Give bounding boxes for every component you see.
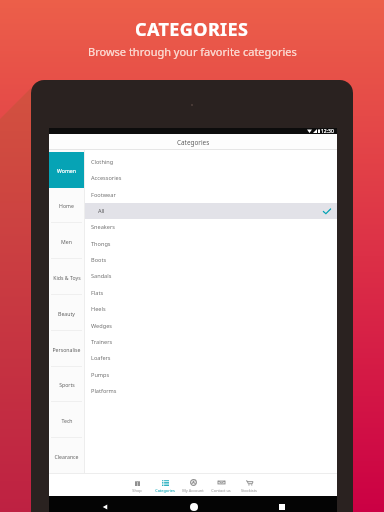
staticText: 12:30 (321, 128, 334, 134)
staticText: Footwear (91, 191, 116, 199)
staticText: Browse through your favorite categories (88, 44, 297, 59)
button[interactable]: Home (188, 501, 199, 512)
staticText: Loafers (91, 354, 111, 362)
staticText: Clearance (54, 453, 79, 460)
staticText: Categories (155, 488, 175, 493)
button[interactable]: Wedges (84, 318, 337, 334)
staticText: Tech (61, 417, 73, 424)
staticText: Platforms (91, 387, 117, 395)
button[interactable]: All (84, 203, 337, 219)
button[interactable]: Men (49, 223, 84, 259)
staticText: Boots (91, 256, 107, 264)
button[interactable]: Boots (84, 252, 337, 268)
staticText: Contact us (211, 488, 231, 493)
button[interactable]: Tech (49, 402, 84, 438)
button[interactable]: Recents (276, 501, 287, 512)
button[interactable]: Pumps (84, 367, 337, 383)
staticText: Heels (91, 305, 106, 313)
staticText: Sandals (91, 272, 112, 280)
staticText: Wedges (91, 322, 112, 330)
staticText: Pumps (91, 371, 110, 379)
button[interactable]: Clothing (84, 154, 337, 170)
button[interactable]: Categories (151, 479, 179, 493)
staticText: All (98, 207, 105, 215)
staticText: Shop (132, 488, 142, 493)
button[interactable]: Sneakers (84, 219, 337, 235)
button[interactable]: Loafers (84, 350, 337, 366)
button[interactable]: Sandals (84, 268, 337, 284)
staticText: Flats (91, 289, 104, 297)
button[interactable]: Heels (84, 301, 337, 317)
button[interactable]: Shop (123, 479, 151, 493)
staticText: Categories (177, 138, 210, 147)
button[interactable]: Kids & Toys (49, 259, 84, 295)
button[interactable]: Flats (84, 285, 337, 301)
button[interactable]: Beauty (49, 295, 84, 331)
staticText: Women (57, 167, 76, 174)
staticText: Thongs (91, 240, 111, 248)
button[interactable]: Personalise (49, 331, 84, 367)
button[interactable]: Clearance (49, 438, 84, 474)
staticText: Kids & Toys (53, 274, 81, 281)
staticText: Men (61, 238, 72, 245)
button[interactable]: Stockists (235, 479, 263, 493)
staticText: Clothing (91, 158, 114, 166)
button[interactable]: Home (49, 187, 84, 223)
button[interactable]: My Account (179, 479, 207, 493)
staticText: Stockists (241, 488, 257, 493)
staticText: Accessories (91, 174, 122, 182)
button[interactable]: Back (99, 501, 110, 512)
staticText: My Account (182, 488, 204, 493)
button[interactable]: Sports (49, 366, 84, 402)
staticText: Sports (59, 381, 75, 388)
button[interactable]: Contact us (207, 479, 235, 493)
staticText: Personalise (52, 346, 81, 353)
staticText: CATEGORIES (135, 17, 249, 42)
staticText: Home (59, 202, 74, 209)
button[interactable]: Trainers (84, 334, 337, 350)
staticText: Sneakers (91, 223, 115, 231)
button[interactable]: Accessories (84, 170, 337, 186)
button[interactable]: Thongs (84, 236, 337, 252)
staticText: Trainers (91, 338, 113, 346)
button[interactable]: Footwear (84, 187, 337, 203)
button[interactable]: Platforms (84, 383, 337, 399)
staticText: Beauty (58, 310, 75, 317)
button[interactable]: Women (49, 152, 84, 188)
